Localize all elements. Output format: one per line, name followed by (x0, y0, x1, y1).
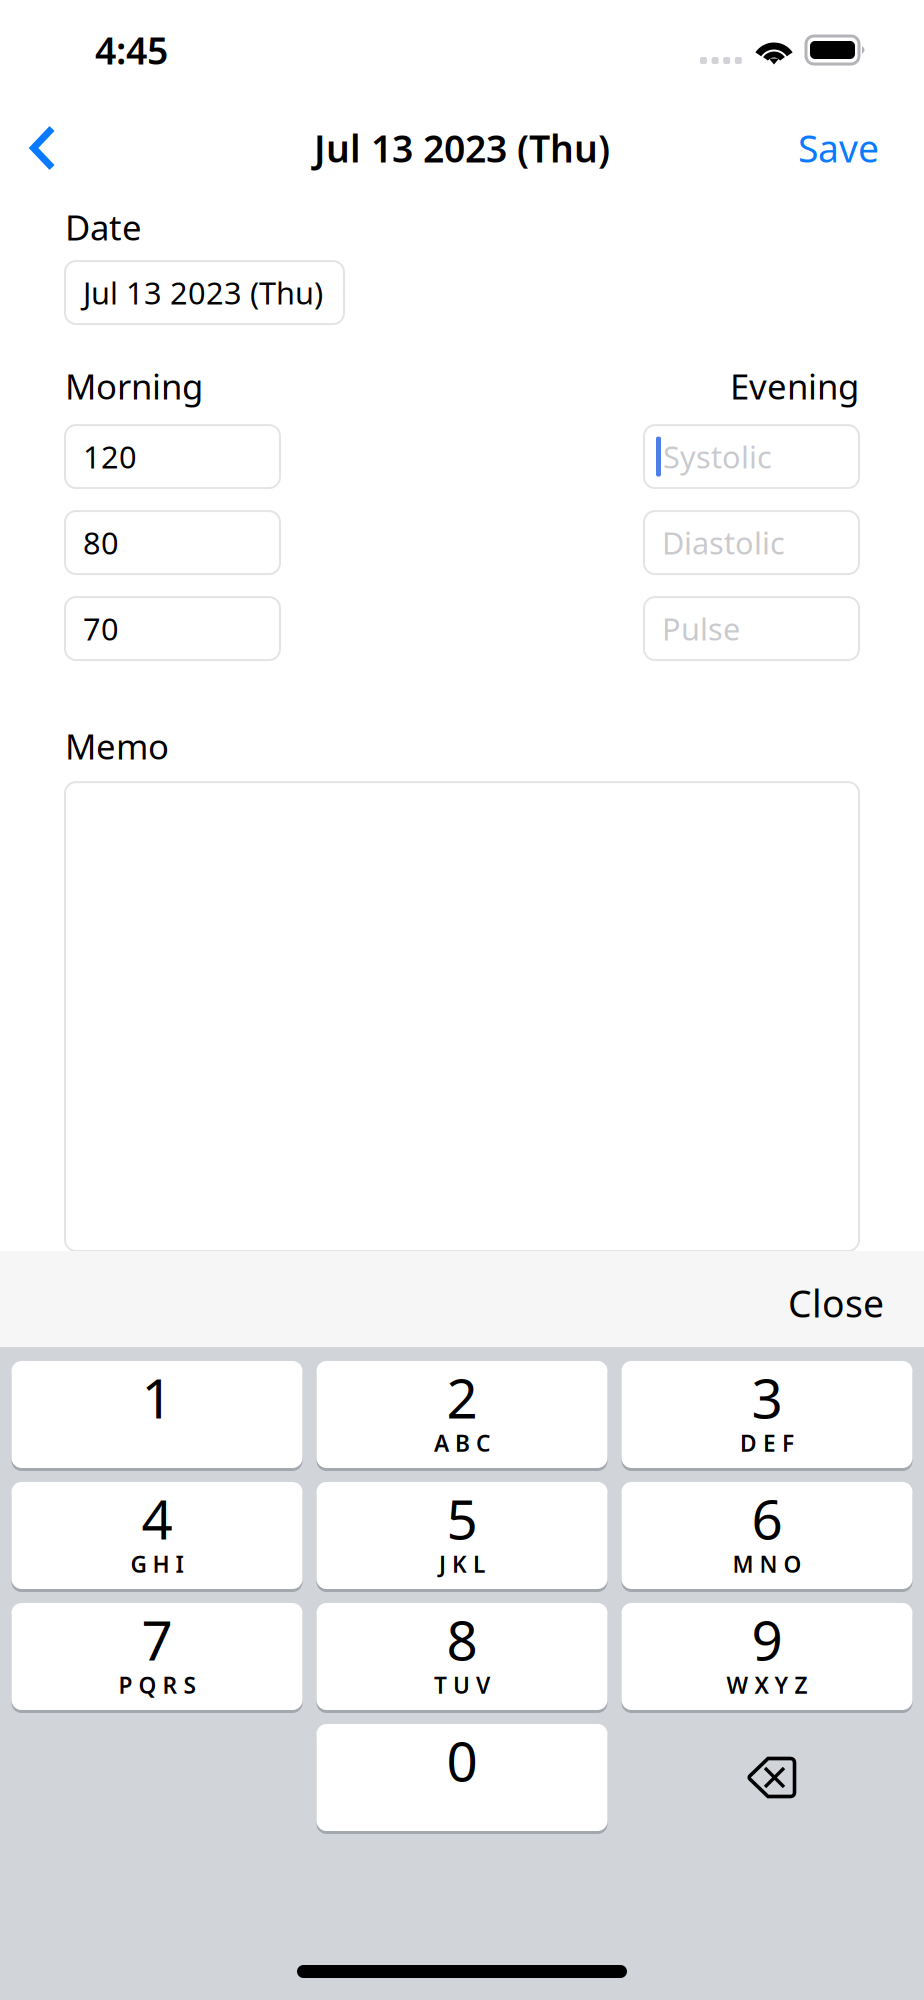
staticText: Morning (65, 363, 203, 409)
staticText: W X Y Z (726, 1670, 807, 1700)
staticText: J K L (439, 1549, 485, 1579)
staticText: Save (798, 123, 879, 173)
staticText: 9 (751, 1603, 782, 1676)
staticText: 4:45 (95, 25, 168, 75)
staticText: Pulse (662, 608, 740, 649)
button[interactable]: Back (0, 106, 84, 190)
staticText: Evening (730, 363, 859, 409)
staticText: D E F (740, 1428, 794, 1458)
staticText: A B C (434, 1428, 490, 1458)
button[interactable]: 5 (316, 1482, 607, 1589)
staticText: 120 (83, 436, 137, 477)
staticText: G H I (130, 1549, 183, 1579)
button[interactable]: 3 (621, 1361, 912, 1468)
staticText: 7 (141, 1603, 172, 1676)
staticText: P Q R S (118, 1670, 195, 1700)
staticText: 4 (141, 1482, 172, 1555)
button[interactable]: 4 (11, 1482, 302, 1589)
staticText: M N O (732, 1549, 801, 1579)
button[interactable]: 1 (11, 1361, 302, 1468)
button[interactable]: Delete (621, 1724, 912, 1831)
button[interactable]: Save (766, 103, 924, 193)
button[interactable]: 9 (621, 1603, 912, 1710)
button[interactable]: Close (748, 1248, 924, 1350)
staticText: Close (788, 1278, 884, 1328)
staticText: T U V (434, 1670, 490, 1700)
staticText: Diastolic (662, 522, 785, 563)
staticText: Jul 13 2023 (Thu) (314, 123, 610, 173)
staticText: 80 (83, 522, 119, 563)
staticText: 3 (751, 1361, 782, 1434)
staticText: Date (65, 204, 142, 250)
button[interactable]: 7 (11, 1603, 302, 1710)
staticText: Jul 13 2023 (Thu) (83, 272, 323, 313)
button[interactable]: 0 (316, 1724, 607, 1831)
staticText: 1 (141, 1361, 172, 1434)
staticText: 0 (446, 1724, 477, 1797)
staticText: Memo (65, 723, 169, 769)
button[interactable]: 6 (621, 1482, 912, 1589)
button[interactable]: 8 (316, 1603, 607, 1710)
staticText: Systolic (663, 436, 772, 477)
staticText: 8 (446, 1603, 477, 1676)
button[interactable]: 2 (316, 1361, 607, 1468)
staticText: 5 (446, 1482, 477, 1555)
staticText: 2 (446, 1361, 477, 1434)
staticText: 70 (83, 608, 119, 649)
staticText: 6 (751, 1482, 782, 1555)
